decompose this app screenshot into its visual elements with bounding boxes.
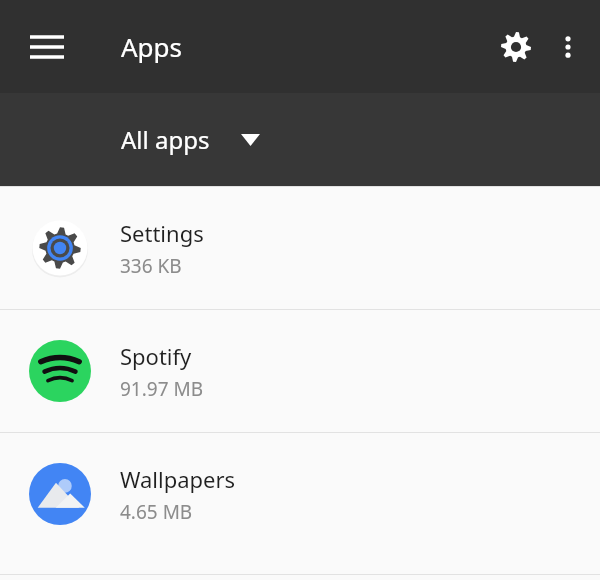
staticText: Wallpapers — [120, 464, 236, 494]
button[interactable]: More options — [544, 23, 592, 71]
button[interactable]: Settings — [0, 187, 600, 309]
staticText: Spotify — [120, 341, 192, 371]
staticText: Settings — [120, 218, 204, 248]
staticText: 336 KB — [120, 253, 182, 279]
button[interactable]: Spotify — [0, 310, 600, 432]
staticText: Apps — [121, 29, 183, 64]
button[interactable]: Wallpapers — [0, 433, 600, 555]
button[interactable]: Open navigation menu — [19, 19, 75, 75]
staticText: All apps — [121, 123, 210, 156]
button[interactable]: All apps — [112, 113, 269, 166]
staticText: 91.97 MB — [120, 376, 204, 402]
staticText: 4.65 MB — [120, 499, 193, 525]
button[interactable]: Settings — [488, 19, 544, 75]
